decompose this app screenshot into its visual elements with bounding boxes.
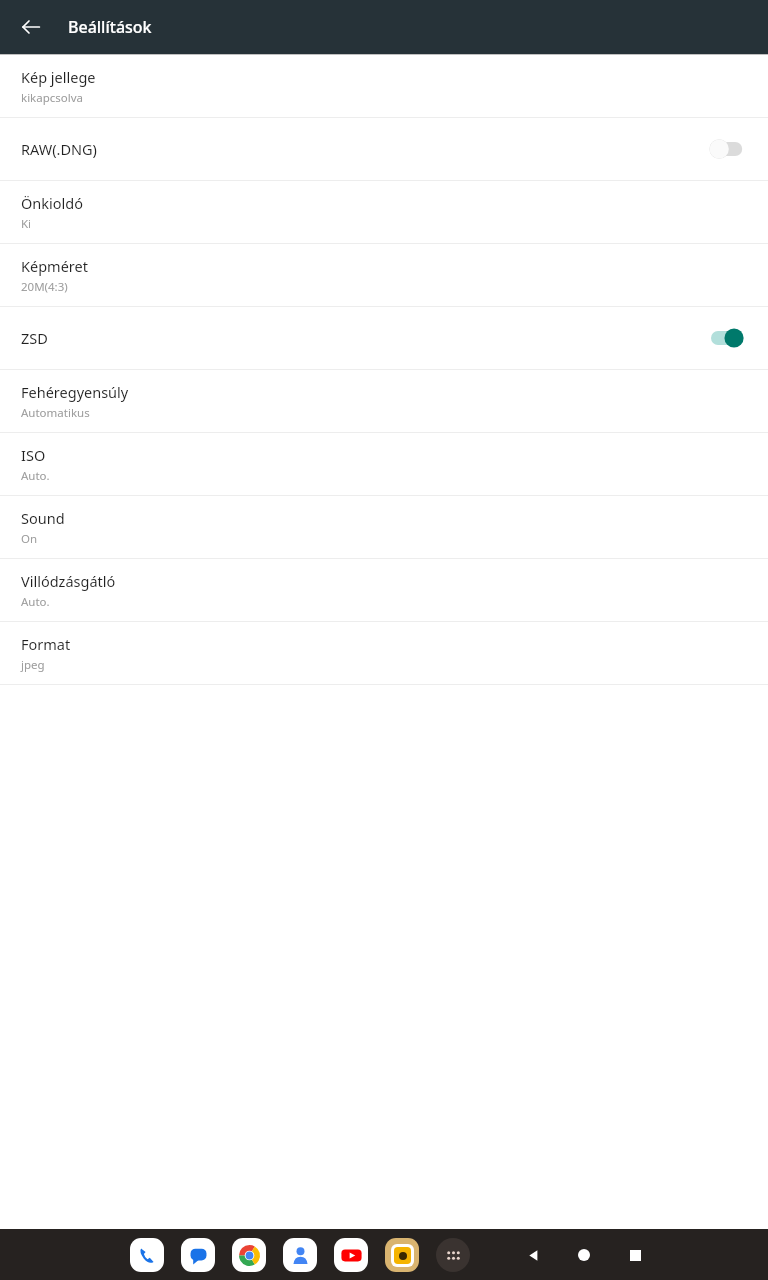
button[interactable]: Camera [385, 1238, 419, 1272]
button[interactable]: Képméret [0, 244, 768, 307]
staticText: Fehéregyensúly [21, 382, 129, 402]
staticText: Kép jellege [21, 67, 96, 87]
button[interactable]: Kép jellege [0, 55, 768, 118]
staticText: RAW(.DNG) [21, 139, 97, 159]
button[interactable]: Chrome [232, 1238, 266, 1272]
button[interactable]: Villódzásgátló [0, 559, 768, 622]
staticText: jpeg [21, 657, 45, 673]
staticText: Ki [21, 216, 32, 232]
staticText: Auto. [21, 468, 50, 484]
button[interactable]: YouTube [334, 1238, 368, 1272]
staticText: On [21, 531, 38, 547]
staticText: Villódzásgátló [21, 571, 116, 591]
button[interactable]: Recents [622, 1242, 648, 1268]
button[interactable]: Back [14, 10, 48, 44]
button[interactable]: Home [571, 1242, 597, 1268]
staticText: 20M(4:3) [21, 279, 68, 295]
staticText: ISO [21, 445, 46, 465]
staticText: Képméret [21, 256, 88, 276]
staticText: Önkioldó [21, 193, 83, 213]
staticText: Sound [21, 508, 65, 528]
button[interactable]: Contacts [283, 1238, 317, 1272]
button[interactable]: Format [0, 622, 768, 685]
staticText: Automatikus [21, 405, 90, 421]
staticText: Auto. [21, 594, 50, 610]
staticText: Format [21, 634, 71, 654]
button[interactable]: All apps [436, 1238, 470, 1272]
staticText: Beállítások [68, 16, 152, 38]
button[interactable]: Sound [0, 496, 768, 559]
staticText: kikapcsolva [21, 90, 84, 106]
button[interactable]: RAW(.DNG) [0, 118, 768, 181]
button[interactable]: ISO [0, 433, 768, 496]
button[interactable]: Back [520, 1242, 546, 1268]
button[interactable]: Phone [130, 1238, 164, 1272]
button[interactable]: Messages [181, 1238, 215, 1272]
button[interactable]: Önkioldó [0, 181, 768, 244]
staticText: ZSD [21, 328, 48, 348]
button[interactable]: ZSD [0, 307, 768, 370]
button[interactable]: Toggle off [707, 137, 747, 161]
button[interactable]: Toggle on [707, 326, 747, 350]
button[interactable]: Fehéregyensúly [0, 370, 768, 433]
